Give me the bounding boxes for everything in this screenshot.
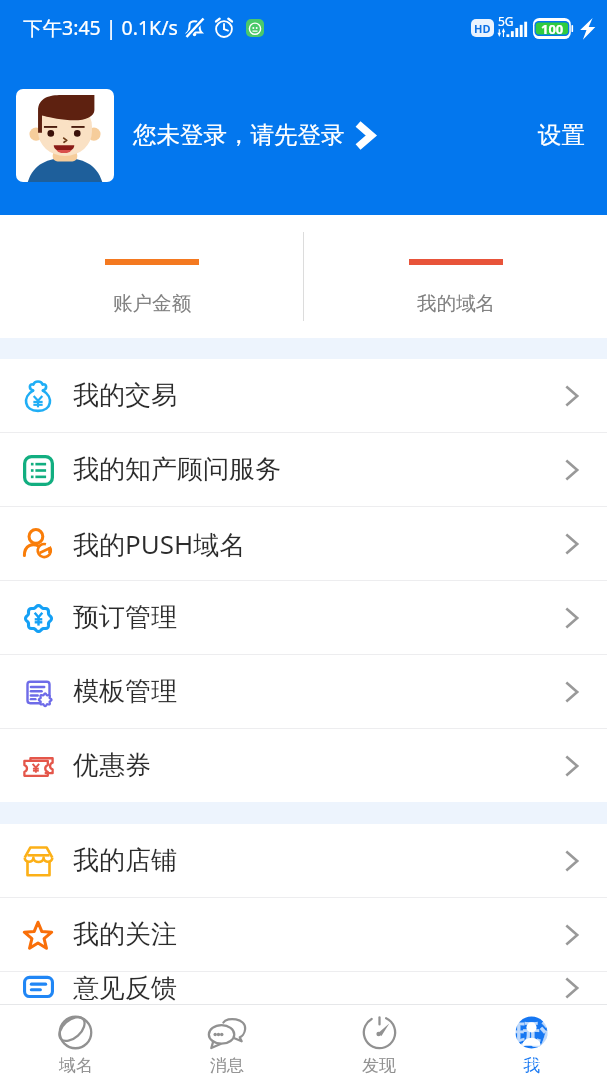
- button[interactable]: 域名: [0, 1005, 151, 1080]
- staticText: 发现: [362, 1055, 396, 1076]
- staticText: 域名: [59, 1055, 93, 1076]
- staticText: HD: [474, 21, 491, 36]
- button[interactable]: 我的域名: [304, 215, 607, 338]
- staticText: 消息: [210, 1055, 244, 1076]
- staticText: 我的店铺: [73, 844, 177, 877]
- button[interactable]: 消息: [151, 1005, 303, 1080]
- button[interactable]: 我的交易: [0, 359, 607, 433]
- staticText: 我的PUSH域名: [73, 526, 246, 562]
- button[interactable]: 我的PUSH域名: [0, 507, 607, 581]
- staticText: 下午3:45 | 0.1K/s: [23, 14, 178, 41]
- button[interactable]: 模板管理: [0, 655, 607, 729]
- staticText: 模板管理: [73, 675, 177, 708]
- button[interactable]: 账户金额: [0, 215, 303, 338]
- button[interactable]: 优惠券: [0, 729, 607, 802]
- staticText: 我的交易: [73, 379, 177, 412]
- staticText: 预订管理: [73, 601, 177, 634]
- button[interactable]: 我: [455, 1005, 607, 1080]
- staticText: 您未登录，请先登录: [133, 120, 345, 150]
- staticText: 100: [541, 20, 564, 38]
- button[interactable]: 我的知产顾问服务: [0, 433, 607, 507]
- staticText: 我的知产顾问服务: [73, 453, 281, 486]
- staticText: 设置: [538, 120, 585, 150]
- staticText: 我的关注: [73, 918, 177, 951]
- staticText: 仍玩游戏: [486, 1018, 594, 1052]
- staticText: 5G: [498, 13, 514, 29]
- button[interactable]: 您未登录，请先登录: [133, 120, 373, 150]
- button[interactable]: 预订管理: [0, 581, 607, 655]
- button[interactable]: 我的店铺: [0, 824, 607, 898]
- staticText: 优惠券: [73, 749, 151, 782]
- button[interactable]: Avatar: [16, 89, 114, 182]
- button[interactable]: 设置: [534, 110, 589, 160]
- button[interactable]: 我的关注: [0, 898, 607, 972]
- staticText: 我的域名: [417, 291, 495, 316]
- staticText: Rengwan Games: [484, 1052, 595, 1071]
- button[interactable]: 发现: [303, 1005, 455, 1080]
- staticText: 我: [523, 1055, 540, 1076]
- staticText: 意见反馈: [73, 972, 177, 1004]
- button[interactable]: 意见反馈: [0, 972, 607, 1004]
- staticText: 账户金额: [113, 291, 191, 316]
